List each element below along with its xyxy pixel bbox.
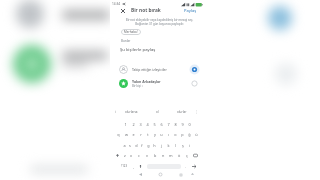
button[interactable]: s — [127, 140, 133, 150]
button[interactable]: v — [143, 150, 151, 160]
button[interactable]: ş — [179, 140, 186, 150]
button[interactable]: f — [139, 140, 145, 150]
staticText: e — [132, 132, 135, 137]
staticText: ç — [186, 153, 188, 158]
button[interactable]: 2 — [129, 119, 137, 129]
button[interactable]: Shift — [114, 150, 121, 160]
button[interactable]: a — [121, 140, 127, 150]
staticText: 7 — [167, 122, 170, 127]
button[interactable]: 7 — [165, 119, 172, 129]
button[interactable]: l — [172, 140, 179, 150]
staticText: Paylaş — [184, 8, 197, 13]
staticText: q — [117, 132, 120, 137]
button[interactable]: t — [144, 129, 151, 139]
button[interactable]: 9 — [179, 119, 186, 129]
button[interactable]: g — [145, 140, 151, 150]
staticText: 4 — [146, 122, 149, 127]
button[interactable]: j — [158, 140, 165, 150]
button[interactable]: Yakın Arkadaşlar — [110, 76, 203, 90]
staticText: c — [138, 153, 140, 158]
button[interactable]: ?123 — [120, 163, 129, 169]
button[interactable]: Mikrofon — [138, 164, 143, 169]
staticText: 14:34 — [112, 2, 121, 6]
staticText: i — [115, 110, 116, 114]
staticText: i — [189, 143, 190, 148]
button[interactable]: Paylaş — [182, 6, 199, 15]
button[interactable]: r — [137, 129, 144, 139]
button[interactable]: z — [121, 150, 128, 160]
button[interactable]: 8 — [172, 119, 179, 129]
staticText: u — [160, 132, 163, 137]
button[interactable]: o — [172, 129, 179, 139]
button[interactable]: u — [158, 129, 165, 139]
button[interactable]: n — [159, 150, 167, 160]
staticText: , — [133, 164, 134, 169]
staticText: ü — [195, 132, 198, 137]
staticText: 8 — [174, 122, 177, 127]
button[interactable]: p — [179, 129, 186, 139]
staticText: s — [129, 143, 131, 148]
staticText: 3 — [139, 122, 142, 127]
staticText: Bir not bırak — [131, 7, 161, 14]
button[interactable]: ol — [156, 110, 159, 114]
button[interactable]: b — [151, 150, 159, 160]
button[interactable]: d — [133, 140, 139, 150]
staticText: Bir kişi › — [132, 84, 143, 88]
button[interactable]: x — [128, 150, 135, 160]
staticText: j — [161, 143, 162, 148]
button[interactable]: i — [186, 140, 193, 150]
button[interactable]: c — [135, 150, 143, 160]
button[interactable]: Git — [191, 164, 197, 169]
staticText: olurlar — [177, 110, 187, 114]
staticText: Merhaba! — [124, 30, 138, 34]
button[interactable]: e — [130, 129, 137, 139]
staticText: v — [146, 153, 148, 158]
staticText: olurlarsa — [125, 110, 138, 114]
button[interactable]: Ana ekran — [157, 171, 164, 178]
button[interactable]: m — [167, 150, 175, 160]
button[interactable]: . — [185, 164, 186, 169]
staticText: b — [154, 153, 157, 158]
staticText: . — [185, 164, 186, 169]
staticText: ⋮ — [195, 110, 199, 114]
button[interactable]: ü — [193, 129, 200, 139]
staticText: ?123 — [121, 164, 128, 168]
button[interactable]: Takip ettiğin izleyiciler — [110, 62, 203, 76]
button[interactable]: y — [151, 129, 158, 139]
staticText: 1 — [124, 122, 127, 127]
button[interactable]: 1 — [121, 119, 129, 129]
button[interactable]: 4 — [144, 119, 151, 129]
button[interactable]: q — [114, 129, 122, 139]
button[interactable]: Klavyeyi gizle — [189, 171, 196, 178]
staticText: 2 — [132, 122, 135, 127]
button[interactable]: ö — [175, 150, 183, 160]
button[interactable]: 6 — [158, 119, 165, 129]
button[interactable]: Daha fazla — [195, 110, 199, 114]
button[interactable]: k — [165, 140, 172, 150]
staticText: Takip ettiğin izleyiciler — [132, 67, 167, 72]
button[interactable]: ı — [165, 129, 172, 139]
button[interactable]: olurlar — [177, 110, 187, 114]
staticText: 5 — [153, 122, 156, 127]
staticText: k — [167, 143, 170, 148]
staticText: l — [175, 143, 176, 148]
button[interactable]: 5 — [151, 119, 158, 129]
staticText: ı — [168, 132, 169, 137]
button[interactable]: w — [122, 129, 130, 139]
button[interactable]: Geri — [137, 171, 144, 178]
button[interactable]: Son uygulamalar — [177, 171, 184, 178]
button[interactable]: ğ — [186, 129, 193, 139]
button[interactable]: 3 — [137, 119, 144, 129]
button[interactable]: ç — [183, 150, 191, 160]
button[interactable]: olurlarsa — [125, 110, 138, 114]
staticText: Yakın Arkadaşlar — [132, 79, 161, 84]
button[interactable]: Sil — [191, 150, 200, 160]
button[interactable]: , — [133, 164, 134, 169]
staticText: z — [124, 153, 126, 158]
button[interactable]: Kapat — [118, 6, 127, 15]
button[interactable]: 0 — [186, 119, 193, 129]
staticText: p — [181, 132, 184, 137]
button[interactable]: Merhaba! — [121, 29, 141, 35]
button[interactable]: h — [151, 140, 158, 150]
